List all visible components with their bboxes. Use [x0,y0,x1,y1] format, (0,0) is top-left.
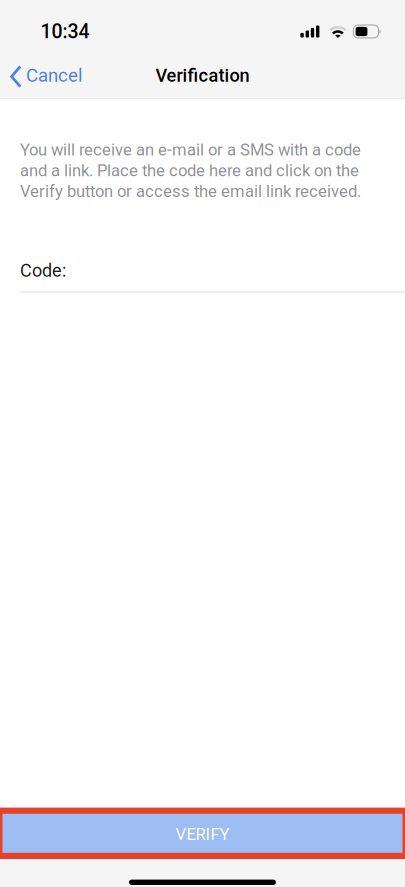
staticText: Code: [20,260,66,281]
staticText: Verification [155,65,249,86]
button[interactable]: VERIFY [0,808,405,859]
staticText: You will receive an e-mail or a SMS with… [20,140,361,201]
button[interactable]: Cancel [0,53,91,97]
staticText: Cancel [26,65,83,86]
staticText: 10:34 [40,20,89,43]
staticText: VERIFY [175,825,229,844]
